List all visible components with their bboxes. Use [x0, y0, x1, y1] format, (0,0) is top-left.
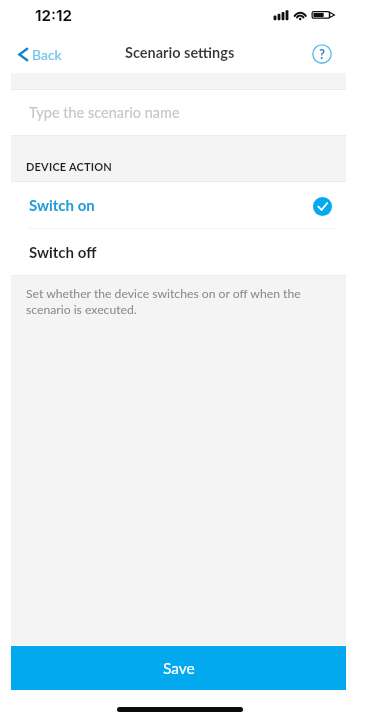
staticText: Type the scenario name — [29, 104, 180, 121]
staticText: Set whether the device switches on or of… — [26, 286, 322, 316]
other: Selected — [313, 197, 332, 216]
button[interactable]: Help — [312, 44, 332, 64]
staticText: Back — [32, 46, 62, 63]
button[interactable]: Switch off — [11, 229, 346, 275]
button[interactable]: Switch on — [11, 182, 346, 228]
staticText: Scenario settings — [125, 44, 235, 61]
staticText: ? — [319, 46, 325, 62]
staticText: Switch off — [29, 243, 97, 261]
staticText: 12:12 — [35, 6, 72, 24]
other: Signal, Wi-Fi and battery status — [272, 9, 336, 22]
staticText: Switch on — [29, 196, 95, 214]
staticText: Save — [163, 659, 195, 678]
button[interactable]: Save — [11, 646, 346, 690]
button[interactable]: Back — [10, 40, 72, 69]
staticText: DEVICE ACTION — [26, 160, 113, 173]
